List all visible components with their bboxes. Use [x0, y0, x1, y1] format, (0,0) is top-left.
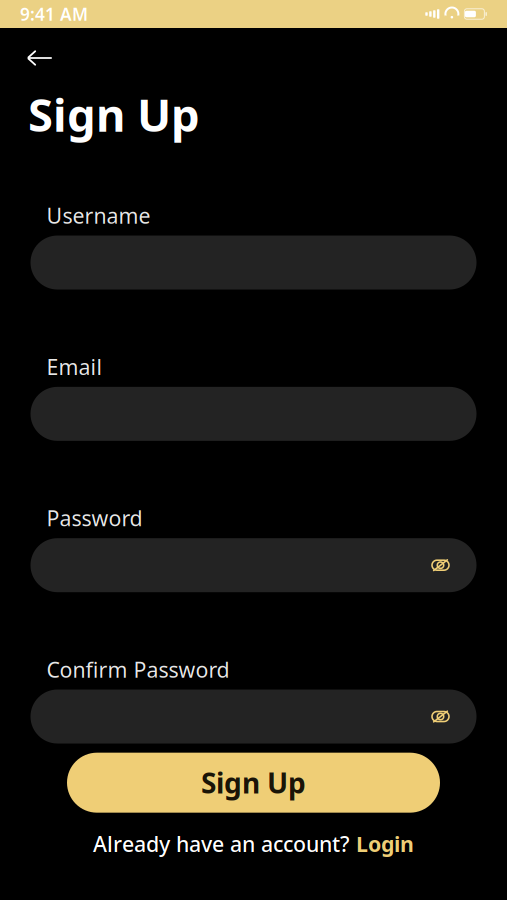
button[interactable]: Sign Up — [67, 753, 440, 813]
staticText: Email — [46, 352, 102, 381]
button[interactable]: Confirm Password — [30, 689, 476, 743]
button[interactable]: Back — [22, 40, 58, 76]
staticText: Username — [46, 201, 150, 229]
staticText: Sign Up — [28, 84, 200, 144]
staticText: Login — [356, 830, 414, 858]
button[interactable]: Email — [30, 387, 476, 441]
staticText: Already have an account? — [93, 830, 356, 858]
staticText: Password — [46, 504, 142, 532]
staticText: Confirm Password — [46, 655, 229, 683]
staticText: 9:41 AM — [20, 2, 88, 25]
button[interactable]: Username — [30, 235, 476, 289]
button[interactable]: Password — [30, 538, 476, 592]
staticText: Sign Up — [201, 764, 306, 801]
button[interactable]: Already have an account? — [81, 826, 426, 862]
